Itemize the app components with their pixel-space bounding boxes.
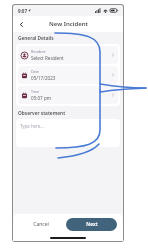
staticText: 05:07 pm [31, 95, 52, 101]
staticText: New Incident [49, 20, 88, 28]
staticText: Select Resident [31, 55, 64, 61]
button[interactable]: Date [18, 66, 118, 84]
staticText: 05/17/2023 [31, 75, 56, 81]
staticText: General Details [18, 35, 54, 42]
staticText: Type here... [20, 123, 44, 129]
button[interactable]: Cancel [19, 218, 62, 231]
staticText: Resident [31, 49, 46, 54]
staticText: Date [31, 69, 39, 74]
staticText: Time [31, 89, 40, 94]
button[interactable]: Type here... [16, 119, 120, 147]
button[interactable]: Next [66, 218, 117, 231]
staticText: Next [86, 221, 98, 228]
button[interactable]: Time [18, 86, 118, 104]
staticText: 9:07 [18, 8, 27, 14]
button[interactable]: Back [16, 19, 27, 30]
staticText: Observer statement [18, 110, 66, 117]
button[interactable]: Resident [18, 46, 118, 64]
staticText: Cancel [33, 221, 49, 228]
